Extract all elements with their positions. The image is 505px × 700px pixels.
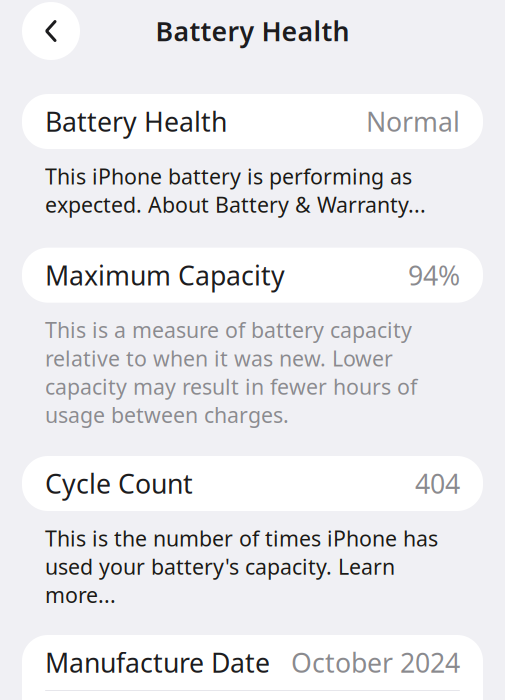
staticText: Cycle Count xyxy=(45,466,193,501)
button[interactable]: Back xyxy=(22,2,80,60)
staticText: 94% xyxy=(408,257,460,293)
staticText: Maximum Capacity xyxy=(45,257,285,293)
staticText: This is the number of times iPhone has u… xyxy=(45,524,438,609)
staticText: 404 xyxy=(415,466,460,501)
staticText: Battery Health xyxy=(155,13,349,49)
button[interactable]: This is the number of times iPhone has u… xyxy=(0,511,505,609)
staticText: This iPhone battery is performing as exp… xyxy=(45,162,426,219)
button[interactable]: This iPhone battery is performing as exp… xyxy=(0,149,505,219)
staticText: Battery Health xyxy=(45,104,227,139)
staticText: Manufacture Date xyxy=(45,645,270,680)
staticText: This is a measure of battery capacity re… xyxy=(45,316,417,429)
staticText: October 2024 xyxy=(291,645,460,680)
staticText: Normal xyxy=(366,104,460,139)
